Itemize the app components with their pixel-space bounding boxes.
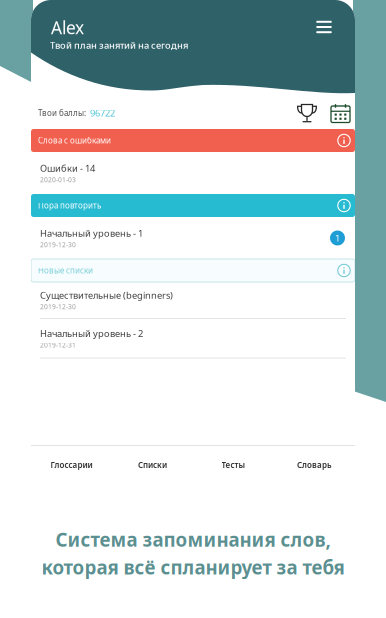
staticText: Твой план занятий на сегодня [50, 39, 188, 51]
staticText: Твои баллы: [38, 108, 86, 118]
button[interactable]: Тесты [193, 445, 274, 485]
staticText: 1 [335, 232, 340, 244]
staticText: Начальный уровень - 2 [40, 327, 143, 339]
button[interactable]: Menu [311, 14, 337, 40]
staticText: 2019-12-30 [40, 240, 76, 249]
staticText: Новые списки [38, 265, 93, 276]
staticText: Ошибки - 14 [40, 162, 95, 174]
button[interactable]: Словарь [274, 445, 355, 485]
button[interactable]: Списки [112, 445, 193, 485]
button[interactable]: Новые списки [31, 259, 355, 282]
staticText: Слова с ошибками [38, 135, 111, 146]
staticText: Глоссарии [50, 460, 92, 470]
staticText: Начальный уровень - 1 [40, 227, 143, 239]
staticText: Тесты [221, 460, 245, 470]
button[interactable]: Пора повторить [31, 194, 355, 217]
staticText: 2019-12-31 [40, 340, 76, 349]
staticText: Списки [138, 460, 167, 470]
button[interactable]: Achievements [297, 103, 317, 122]
button[interactable]: Ошибки - 14 [31, 152, 355, 194]
staticText: Словарь [297, 460, 332, 470]
staticText: Существительные (beginners) [40, 289, 173, 301]
button[interactable]: Слова с ошибками [31, 129, 355, 152]
staticText: 2019-12-30 [40, 302, 76, 311]
button[interactable]: Начальный уровень - 1 [31, 217, 355, 259]
staticText: 96722 [86, 107, 115, 119]
button[interactable]: Calendar [331, 103, 350, 122]
staticText: 2020-01-03 [40, 175, 76, 184]
staticText: которая всё спланирует за тебя [41, 555, 344, 580]
staticText: Alex [51, 16, 84, 39]
button[interactable]: Глоссарии [31, 445, 112, 485]
staticText: Система запоминания слов, [55, 527, 330, 552]
staticText: Пора повторить [38, 200, 101, 211]
button[interactable]: Существительные (beginners) [31, 282, 355, 318]
button[interactable]: Начальный уровень - 2 [31, 319, 355, 357]
